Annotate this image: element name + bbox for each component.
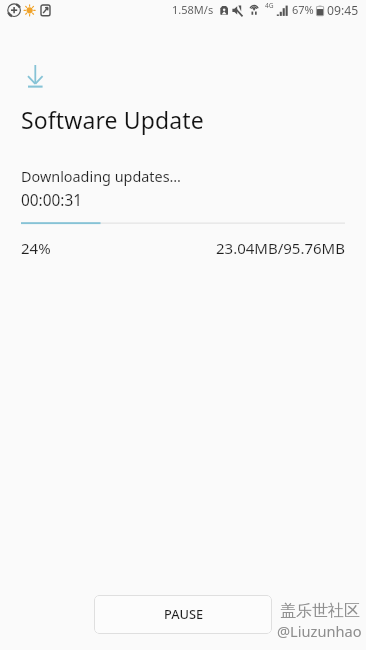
- staticText: 23.04MB/95.76MB: [216, 238, 345, 258]
- staticText: 盖乐世社区: [280, 601, 360, 621]
- staticText: 4G: [265, 1, 274, 10]
- staticText: 00:00:31: [21, 190, 83, 211]
- staticText: 1.58M/s: [172, 2, 214, 17]
- staticText: @Liuzunhao: [277, 621, 362, 641]
- staticText: 09:45: [327, 2, 359, 19]
- staticText: Software Update: [21, 104, 204, 135]
- staticText: Downloading updates…: [21, 167, 181, 187]
- staticText: 67%: [292, 2, 314, 17]
- button[interactable]: PAUSE: [94, 595, 272, 634]
- staticText: 24%: [21, 238, 51, 258]
- button[interactable]: Download software update: [21, 58, 50, 94]
- staticText: PAUSE: [164, 605, 204, 622]
